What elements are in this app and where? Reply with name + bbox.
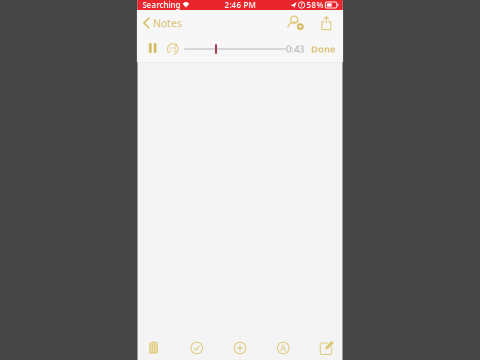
button[interactable]: Pause	[141, 40, 160, 58]
button[interactable]: Add People	[285, 10, 316, 35]
staticText: 58%	[306, 0, 323, 10]
button[interactable]: Delete	[140, 335, 166, 360]
staticText: 0:43	[286, 43, 304, 55]
button[interactable]: Checklist	[184, 335, 210, 360]
button[interactable]: Share	[316, 11, 339, 35]
staticText: 15	[169, 45, 177, 54]
staticText: Searching	[142, 0, 180, 10]
staticText: 2:46 PM	[224, 0, 255, 10]
button[interactable]: Notes	[137, 11, 188, 35]
button[interactable]: Skip back 15 seconds	[160, 40, 184, 58]
staticText: A	[280, 342, 286, 354]
button[interactable]: Add attachment	[227, 335, 253, 360]
button[interactable]: Done	[304, 38, 340, 60]
button[interactable]: Markup	[270, 335, 296, 360]
button[interactable]: Compose	[313, 335, 339, 360]
staticText: Notes	[153, 16, 182, 30]
staticText: Done	[311, 43, 335, 55]
